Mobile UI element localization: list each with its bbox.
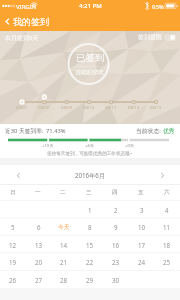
staticText: 14 — [60, 241, 68, 249]
button[interactable]: 15 — [77, 236, 103, 253]
staticText: 16 — [112, 241, 120, 249]
button[interactable]: 22 — [77, 253, 103, 270]
staticText: 1 — [88, 206, 92, 214]
button[interactable]: 4 — [154, 201, 180, 218]
staticText: 已签到 — [76, 52, 105, 64]
button[interactable]: 9 — [103, 218, 129, 235]
staticText: 3 — [140, 206, 144, 214]
button[interactable]: 25 — [154, 253, 180, 270]
staticText: +0天 — [125, 143, 134, 149]
button[interactable]: 今天 — [51, 218, 77, 235]
staticText: 08/08 — [38, 105, 50, 111]
staticText: 签到提醒 — [138, 33, 162, 41]
staticText: 30 — [112, 276, 120, 284]
staticText: 19 — [9, 258, 17, 266]
button[interactable]: 20 — [26, 253, 52, 270]
staticText: 12 — [9, 241, 17, 249]
staticText: VIRGIN — [16, 3, 37, 11]
staticText: 20 — [35, 258, 43, 266]
button[interactable]: 17 — [129, 236, 155, 253]
staticText: 8 — [88, 223, 92, 231]
button[interactable]: 19 — [0, 253, 26, 270]
staticText: 95% — [152, 3, 164, 11]
button[interactable]: 29 — [77, 271, 103, 288]
staticText: 17 — [138, 241, 146, 249]
staticText: 23 — [112, 258, 120, 266]
staticText: 24 — [138, 258, 146, 266]
staticText: 28 — [60, 276, 68, 284]
button[interactable]: 13 — [26, 236, 52, 253]
button[interactable]: 1 — [77, 201, 103, 218]
staticText: 08/09 — [61, 105, 73, 111]
staticText: 4:21 PM — [79, 2, 102, 10]
button[interactable]: 21 — [51, 253, 77, 270]
other: Back — [3, 17, 12, 26]
staticText: 29 — [86, 276, 94, 284]
staticText: 08/11 — [105, 105, 117, 111]
button[interactable]: 23 — [103, 253, 129, 270]
button[interactable]: 14 — [51, 236, 77, 253]
staticText: 2016年6月 — [75, 171, 106, 179]
button[interactable]: 5 — [0, 218, 26, 235]
staticText: 二 — [60, 189, 66, 196]
staticText: 三 — [86, 189, 92, 196]
staticText: 当前状态: — [136, 127, 163, 135]
staticText: 近30 天签到率: — [5, 127, 46, 135]
button[interactable]: 30 — [103, 271, 129, 288]
staticText: 六 — [164, 189, 170, 196]
button[interactable]: 2 — [103, 201, 129, 218]
button[interactable]: Back — [0, 16, 55, 27]
button[interactable]: 16 — [103, 236, 129, 253]
button[interactable]: 11 — [154, 218, 180, 235]
staticText: 27 — [35, 276, 43, 284]
staticText: 坚持每天签到，可换得优秀的工作状态哦~ — [47, 150, 133, 156]
staticText: +10天 — [42, 143, 54, 149]
staticText: 四 — [112, 189, 118, 196]
staticText: 2 — [114, 206, 118, 214]
staticText: 21 — [60, 258, 68, 266]
staticText: +6天 — [85, 143, 94, 149]
button[interactable]: 24 — [129, 253, 155, 270]
button[interactable]: 签到提醒 — [138, 33, 176, 41]
staticText: 18 — [163, 241, 171, 249]
button[interactable]: 27 — [26, 271, 52, 288]
button[interactable]: 8 — [77, 218, 103, 235]
staticText: 我的签到 — [13, 16, 49, 27]
button[interactable]: 3 — [129, 201, 155, 218]
button[interactable]: Next month — [156, 169, 168, 181]
staticText: 今天 — [58, 223, 70, 230]
staticText: 08/07 — [16, 105, 28, 111]
staticText: 5 — [11, 223, 15, 231]
staticText: 6 — [37, 223, 41, 231]
staticText: 一 — [35, 189, 41, 196]
staticText: 08/13 — [150, 105, 162, 111]
button[interactable]: 26 — [0, 271, 26, 288]
staticText: 71.43% — [46, 127, 66, 135]
staticText: 11 — [163, 223, 171, 231]
staticText: 13 — [35, 241, 43, 249]
button[interactable]: 6 — [26, 218, 52, 235]
staticText: 08/12 — [128, 105, 140, 111]
button[interactable]: Previous month — [12, 169, 24, 181]
button[interactable]: 18 — [154, 236, 180, 253]
staticText: 日 — [10, 189, 16, 196]
button[interactable]: 28 — [51, 271, 77, 288]
staticText: 本月签到5天 — [5, 34, 39, 42]
staticText: 15 — [86, 241, 94, 249]
staticText: 4 — [165, 206, 169, 214]
staticText: 08/10 — [83, 105, 95, 111]
staticText: 9 — [114, 223, 118, 231]
staticText: 连续签到5天 — [76, 69, 104, 76]
button[interactable]: 10 — [129, 218, 155, 235]
staticText: 25 — [163, 258, 171, 266]
staticText: 22 — [86, 258, 94, 266]
staticText: 10 — [138, 223, 146, 231]
staticText: 优秀 — [163, 127, 175, 134]
staticText: 五 — [138, 189, 144, 196]
staticText: 26 — [9, 276, 17, 284]
button[interactable]: 12 — [0, 236, 26, 253]
